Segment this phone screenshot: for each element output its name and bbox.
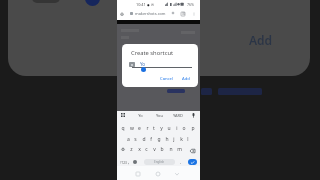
staticText: u (167, 125, 171, 131)
button[interactable]: Home (120, 12, 124, 16)
staticText: f (150, 136, 152, 142)
staticText: c (145, 146, 148, 152)
staticText: x (138, 146, 141, 152)
button[interactable]: Enter (188, 159, 197, 165)
button[interactable]: Add shortcut (85, 0, 100, 6)
staticText: a (127, 136, 130, 142)
button[interactable]: Backspace (190, 149, 195, 153)
staticText: k (180, 136, 183, 142)
staticText: p (191, 125, 195, 131)
staticText: q (121, 125, 125, 131)
staticText: l (187, 136, 189, 142)
button[interactable]: New tab (171, 11, 175, 15)
staticText: i (176, 125, 178, 131)
button[interactable]: Add (179, 73, 193, 85)
staticText: m (177, 146, 182, 152)
button[interactable]: Back (175, 172, 179, 176)
button[interactable]: Add (246, 29, 276, 51)
staticText: e (138, 125, 141, 131)
staticText: Add (249, 32, 273, 48)
staticText: 30 (182, 12, 185, 16)
button[interactable]: ?123 (120, 159, 128, 166)
staticText: Yo (138, 113, 143, 118)
staticText: makershots.com (135, 11, 166, 16)
staticText: You (156, 113, 163, 118)
staticText: Add (182, 76, 190, 82)
staticText: , (128, 159, 130, 165)
staticText: ● (147, 3, 150, 6)
button[interactable]: Emoji (133, 160, 137, 164)
staticText: English (154, 160, 165, 164)
button[interactable]: Shift (121, 147, 125, 151)
staticText: b (160, 146, 164, 152)
button[interactable]: Keyboard toolbar (121, 113, 125, 117)
staticText: Cancel (160, 76, 174, 82)
staticText: h (165, 136, 169, 142)
staticText: o (182, 125, 186, 131)
staticText: y (160, 125, 163, 131)
staticText: w (130, 125, 134, 131)
staticText: . (180, 159, 182, 165)
staticText: j (173, 136, 175, 142)
staticText: ✉ (151, 3, 154, 7)
button[interactable]: Home (156, 172, 160, 176)
button[interactable]: More options (192, 12, 196, 16)
staticText: 10:41 (136, 2, 146, 7)
staticText: t (153, 125, 155, 131)
staticText: s (134, 136, 137, 142)
button[interactable]: English (144, 159, 175, 165)
button[interactable]: Cancel (157, 73, 177, 85)
staticText: YARD (173, 113, 183, 118)
button[interactable]: Recents (136, 172, 140, 176)
staticText: n (169, 146, 173, 152)
staticText: r (146, 125, 149, 131)
staticText: 76% (187, 2, 195, 7)
staticText: g (157, 136, 161, 142)
button[interactable]: Tabs (181, 12, 185, 16)
button[interactable]: Voice input (192, 113, 195, 118)
staticText: Create shortcut (131, 49, 174, 57)
staticText: d (142, 136, 146, 142)
staticText: z (130, 146, 133, 152)
staticText: ?123 (120, 161, 127, 165)
staticText: Yo (140, 61, 146, 67)
staticText: v (153, 146, 156, 152)
